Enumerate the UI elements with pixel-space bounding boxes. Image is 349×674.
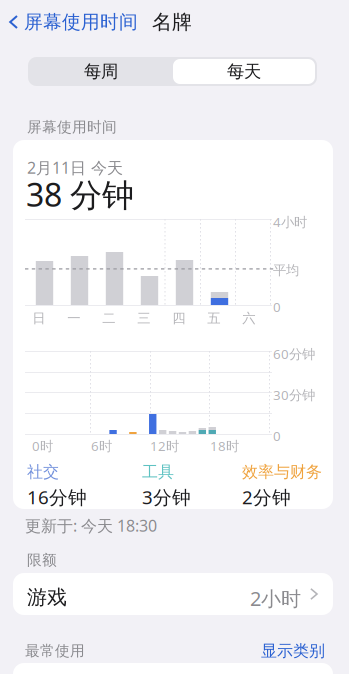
staticText: 三 [137,310,150,326]
staticText: 四 [172,310,185,326]
staticText: 0 [273,427,281,445]
staticText: 社交 [27,462,59,482]
staticText: 一 [67,310,80,326]
staticText: 屏幕使用时间 [27,118,117,136]
staticText: 每天 [227,61,261,82]
button[interactable]: 每周 [30,59,172,84]
staticText: 每周 [84,61,118,82]
staticText: 屏幕使用时间 [24,10,138,33]
staticText: 12时 [150,437,179,455]
staticText: 最常使用 [25,642,85,660]
staticText: 六 [242,310,255,326]
button[interactable]: 游戏 [13,573,333,615]
staticText: 18时 [210,437,239,455]
staticText: 6时 [91,437,112,455]
staticText: 更新于: 今天 18:30 [25,515,157,536]
staticText: 3分钟 [142,485,191,509]
staticText: 平均 [273,262,299,278]
staticText: 30分钟 [273,386,315,404]
staticText: 0时 [32,437,53,455]
staticText: 名牌 [152,10,192,34]
staticText: 日 [32,310,45,326]
staticText: 2小时 [250,585,301,612]
button[interactable]: 显示类别 [261,641,325,661]
staticText: 限额 [27,551,57,569]
staticText: 16分钟 [27,485,87,509]
staticText: 工具 [142,462,174,482]
button[interactable]: 屏幕使用时间 [0,2,146,42]
button[interactable]: 每天 [173,59,315,84]
staticText: 五 [207,310,220,326]
staticText: 4小时 [273,213,307,231]
staticText: 2分钟 [242,485,291,509]
staticText: 游戏 [27,585,67,610]
staticText: 2月11日 今天 [27,157,123,178]
staticText: 显示类别 [261,641,325,661]
staticText: 二 [102,310,115,326]
staticText: 0 [273,298,281,316]
staticText: 效率与财务 [242,462,322,482]
staticText: 60分钟 [273,345,315,363]
staticText: 38 分钟 [26,173,134,215]
